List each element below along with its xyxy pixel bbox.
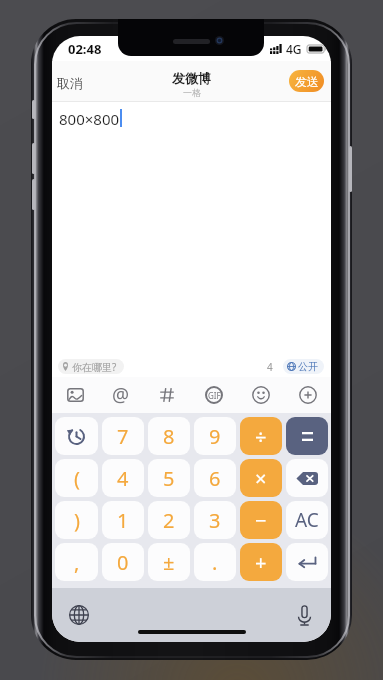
button[interactable]: 7 — [102, 417, 144, 455]
staticText: ÷ — [255, 423, 267, 450]
staticText: , — [74, 549, 80, 576]
staticText: + — [255, 549, 267, 576]
button[interactable]: . — [194, 543, 236, 581]
staticText: 公开 — [298, 360, 318, 373]
button[interactable]: + — [240, 543, 282, 581]
staticText: 9 — [209, 423, 221, 450]
button[interactable]: ret — [286, 543, 328, 581]
staticText: 你在哪里? — [72, 360, 117, 374]
staticText: ) — [74, 507, 80, 534]
staticText: 1 — [117, 507, 129, 534]
button[interactable]: Emoji — [237, 377, 284, 413]
staticText: 4 — [117, 465, 129, 492]
button[interactable]: 你在哪里? — [58, 359, 124, 374]
button[interactable]: 1 — [102, 501, 144, 539]
button[interactable]: More — [284, 377, 331, 413]
button[interactable]: ± — [148, 543, 190, 581]
staticText: 0 — [117, 549, 129, 576]
button[interactable]: del — [286, 459, 328, 497]
staticText: 800×800 — [59, 109, 120, 129]
button[interactable]: GIF — [190, 377, 237, 413]
button[interactable]: ÷ — [240, 417, 282, 455]
button[interactable]: 发送 — [289, 70, 324, 92]
button[interactable]: − — [240, 501, 282, 539]
button[interactable]: , — [55, 543, 98, 581]
button[interactable]: 3 — [194, 501, 236, 539]
staticText: 一格 — [183, 87, 201, 98]
staticText: 4 — [267, 360, 273, 374]
staticText: 6 — [209, 465, 221, 492]
staticText: × — [255, 465, 267, 492]
button[interactable]: 4 — [102, 459, 144, 497]
staticText: 7 — [117, 423, 129, 450]
staticText: 8 — [163, 423, 175, 450]
staticText: AC — [295, 507, 319, 533]
staticText: 5 — [163, 465, 175, 492]
button[interactable]: 5 — [148, 459, 190, 497]
staticText: 发微博 — [172, 70, 211, 86]
button[interactable]: 0 — [102, 543, 144, 581]
button[interactable]: Switch keyboard — [65, 601, 93, 629]
staticText: 2 — [163, 507, 175, 534]
staticText: 3 — [209, 507, 221, 534]
button[interactable]: 9 — [194, 417, 236, 455]
button[interactable]: Topic — [144, 377, 190, 413]
button[interactable]: Voice input — [290, 601, 318, 629]
staticText: ± — [163, 549, 175, 576]
staticText: 取消 — [57, 75, 83, 91]
staticText: 发送 — [295, 74, 319, 89]
button[interactable]: 2 — [148, 501, 190, 539]
button[interactable]: = — [286, 417, 328, 455]
staticText: @ — [112, 382, 130, 408]
staticText: − — [255, 507, 267, 534]
button[interactable]: Mention — [98, 377, 144, 413]
button[interactable]: ( — [55, 459, 98, 497]
button[interactable]: ) — [55, 501, 98, 539]
staticText: . — [212, 549, 218, 576]
button[interactable]: Photo — [52, 377, 98, 413]
button[interactable]: hist — [55, 417, 98, 455]
button[interactable]: 6 — [194, 459, 236, 497]
button[interactable]: 取消 — [52, 69, 93, 97]
staticText: 4G — [286, 41, 302, 57]
staticText: 02:48 — [68, 40, 102, 58]
button[interactable]: × — [240, 459, 282, 497]
button[interactable]: 公开 — [283, 359, 324, 374]
staticText: GIF — [208, 390, 221, 401]
button[interactable]: 8 — [148, 417, 190, 455]
staticText: ( — [74, 465, 80, 492]
button[interactable]: AC — [286, 501, 328, 539]
